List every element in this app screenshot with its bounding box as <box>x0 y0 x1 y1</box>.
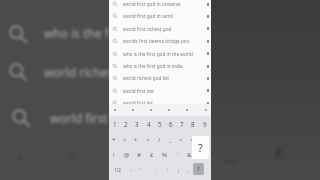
staticText: worlds first beema bridge pics <box>123 38 190 44</box>
button[interactable]: 7 <box>162 114 202 134</box>
staticText: _ <box>169 136 172 144</box>
button[interactable]: | <box>184 130 224 150</box>
button[interactable]: @ <box>107 145 147 165</box>
button[interactable]: 9 <box>185 114 225 134</box>
staticText: + <box>134 136 138 144</box>
staticText: ¨ <box>175 151 179 159</box>
button[interactable]: 6 <box>151 114 191 134</box>
button[interactable]: / <box>139 130 179 150</box>
button[interactable]: ' <box>121 160 161 180</box>
button[interactable] <box>109 35 211 47</box>
button[interactable]: + <box>116 130 156 150</box>
button[interactable] <box>109 72 211 84</box>
button[interactable]: 4 <box>129 114 169 134</box>
button[interactable]: ; <box>159 160 199 180</box>
staticText: 2 <box>124 120 128 129</box>
staticText: - <box>130 166 132 174</box>
button[interactable]: : <box>148 160 188 180</box>
button[interactable] <box>109 0 211 10</box>
button[interactable] <box>109 85 211 97</box>
button[interactable]: ! <box>94 145 134 165</box>
staticText: 8 <box>191 120 195 129</box>
button[interactable]: , <box>168 160 208 180</box>
staticText: world first god in universe <box>123 1 181 7</box>
button[interactable]: = <box>128 130 168 150</box>
button[interactable]: 8 <box>173 114 213 134</box>
button[interactable]: ? <box>193 163 204 175</box>
button[interactable] <box>109 23 211 35</box>
staticText: / <box>158 136 161 144</box>
staticText: 6 <box>169 120 173 129</box>
staticText: who is the f <box>44 25 109 41</box>
staticText: world riches <box>44 64 112 80</box>
staticText: 4 <box>147 120 151 129</box>
staticText: < <box>179 136 183 144</box>
button[interactable]: ¨ <box>157 145 197 165</box>
staticText: & <box>187 151 192 159</box>
staticText: % <box>162 151 167 159</box>
button[interactable]: 5 <box>140 114 180 134</box>
button[interactable] <box>109 48 211 60</box>
button[interactable]: & <box>169 145 209 165</box>
staticText: > <box>190 136 194 144</box>
button[interactable]: 3 <box>117 114 157 134</box>
staticText: 7 <box>180 120 184 129</box>
staticText: * <box>112 136 116 144</box>
button[interactable]: # <box>119 145 159 165</box>
button[interactable] <box>109 60 211 72</box>
staticText: ? <box>197 165 200 173</box>
button[interactable]: < <box>161 130 201 150</box>
button[interactable]: . <box>137 160 177 180</box>
staticText: ! <box>113 151 115 159</box>
staticText: who is the first god in india <box>123 63 183 69</box>
button[interactable]: £ <box>132 145 172 165</box>
staticText: @ <box>124 151 130 159</box>
staticText: = <box>146 136 150 144</box>
staticText: ; <box>178 166 180 174</box>
staticText: # <box>137 151 141 159</box>
button[interactable]: 2 <box>106 114 146 134</box>
staticText: ^ <box>123 136 127 144</box>
button[interactable]: 1/2 <box>97 160 137 180</box>
staticText: 1/2 <box>114 167 121 173</box>
staticText: world richest god list <box>123 75 170 81</box>
staticText: world first me <box>123 88 154 94</box>
button[interactable]: ^ <box>105 130 145 150</box>
button[interactable]: 1 <box>95 114 135 134</box>
staticText: : <box>167 166 169 174</box>
staticText: world first god in tamil <box>123 13 173 19</box>
button[interactable]: % <box>144 145 184 165</box>
staticText: world first list <box>123 100 154 106</box>
staticText: £ <box>275 142 284 162</box>
staticText: who is the first god in the world <box>123 51 193 57</box>
button[interactable]: * <box>94 130 134 150</box>
staticText: 9 <box>203 120 207 129</box>
staticText: 1 <box>113 120 117 129</box>
staticText: 5 <box>158 120 162 129</box>
button[interactable] <box>109 97 211 109</box>
button[interactable]: - <box>111 160 151 180</box>
staticText: world first l <box>50 110 112 126</box>
staticText: ' <box>140 166 142 174</box>
button[interactable]: _ <box>150 130 190 150</box>
staticText: , <box>187 166 189 174</box>
staticText: world first richest god <box>123 26 172 32</box>
staticText: ? <box>198 140 203 155</box>
staticText: 3 <box>135 120 139 129</box>
staticText: £ <box>150 151 154 159</box>
staticText: . <box>156 166 158 174</box>
button[interactable]: > <box>172 130 212 150</box>
button[interactable] <box>109 10 211 22</box>
